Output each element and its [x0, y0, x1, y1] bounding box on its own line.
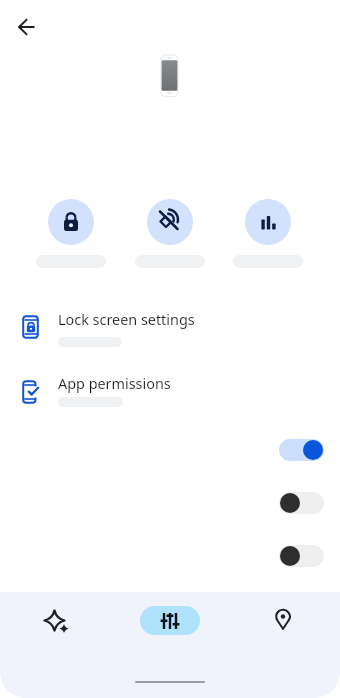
staticText: Lock screen settings [58, 310, 195, 330]
button[interactable] [279, 545, 324, 567]
button[interactable] [245, 199, 291, 245]
button[interactable] [279, 439, 324, 461]
staticText: App permissions [58, 374, 171, 394]
button[interactable]: Lock screen settings [0, 303, 340, 357]
button[interactable] [140, 606, 200, 635]
button[interactable] [31, 597, 79, 645]
button[interactable] [279, 492, 324, 514]
button[interactable] [48, 199, 94, 245]
button[interactable]: App permissions [0, 368, 340, 418]
button[interactable] [259, 597, 307, 645]
button[interactable] [11, 11, 43, 43]
button[interactable] [147, 199, 193, 245]
